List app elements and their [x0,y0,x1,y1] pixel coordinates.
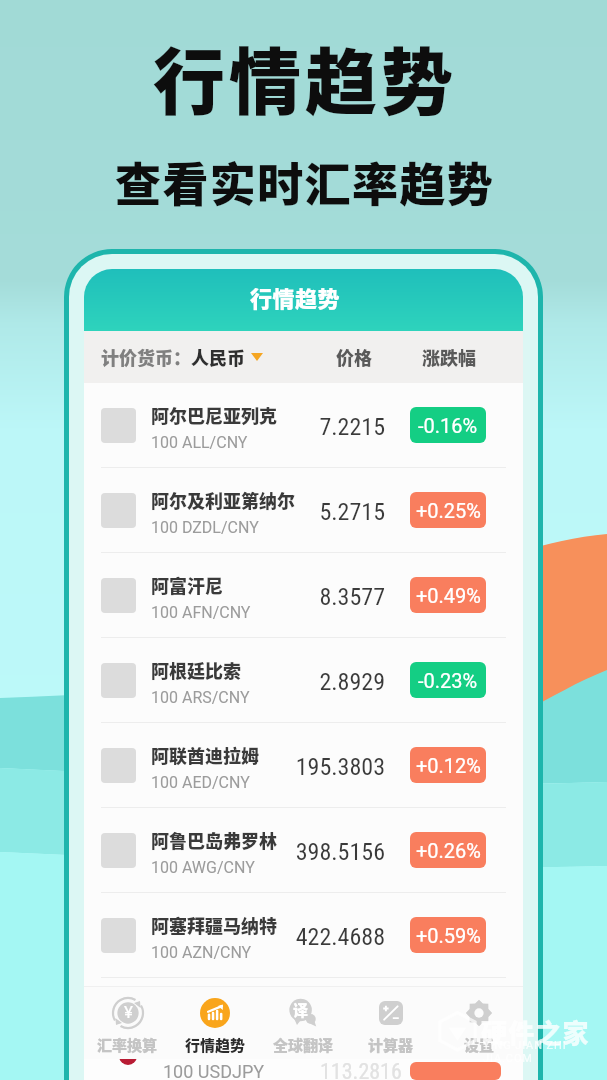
staticText: 计价货币： [101,344,191,370]
staticText: 100 DZDL/CNY [151,518,259,537]
button[interactable]: 行情趋势 [171,986,259,1059]
button[interactable]: 全球翻译 [259,986,347,1059]
staticText: 113.2816 [320,1059,402,1080]
staticText: 阿尔及利亚第纳尔 [151,487,295,513]
other: 行情趋势 [200,998,230,1028]
staticText: 100 USDJPY [163,1061,265,1080]
other: 计算器 [376,998,406,1028]
staticText: 涨跌幅 [422,344,476,370]
staticText: +0.12% [416,754,481,777]
staticText: 行情趋势 [153,24,458,128]
button[interactable]: 计价货币： [101,344,263,370]
staticText: 行情趋势 [185,1034,246,1056]
staticText: 2.8929 [241,668,385,696]
staticText: 阿塞拜疆马纳特 [151,912,277,938]
button[interactable]: 阿富汗尼 [84,553,523,637]
staticText: 设置 [464,1034,495,1056]
button[interactable]: 阿塞拜疆马纳特 [84,893,523,977]
button[interactable]: 阿尔及利亚第纳尔 [84,468,523,552]
staticText: +0.49% [416,584,481,607]
other: 全球翻译 [288,998,318,1028]
staticText: 人民币 [191,344,245,370]
staticText: 行情趋势 [250,281,341,313]
staticText: 阿联酋迪拉姆 [151,742,259,768]
staticText: 100 AWG/CNY [151,858,255,877]
staticText: -0.16% [418,414,478,437]
staticText: +0.25% [416,499,481,522]
staticText: 汇率换算 [97,1034,158,1056]
other: 汇率换算 [113,998,143,1028]
button[interactable]: 阿联酋迪拉姆 [84,723,523,807]
staticText: 7.2215 [241,413,385,441]
button[interactable]: 阿根廷比索 [84,638,523,722]
staticText: 阿富汗尼 [151,572,223,598]
button[interactable]: 阿鲁巴岛弗罗林 [84,808,523,892]
staticText: 100 AFN/CNY [151,603,251,622]
staticText: 195.3803 [241,753,385,781]
staticText: 阿鲁巴岛弗罗林 [151,827,277,853]
staticText: 译 [293,999,309,1021]
other: 设置 [464,998,494,1028]
staticText: 5.2715 [241,498,385,526]
staticText: ¥ [124,1002,133,1022]
staticText: 硬件之家 [481,1013,590,1051]
button[interactable]: 阿尔巴尼亚列克 [84,383,523,467]
staticText: 8.3577 [241,583,385,611]
staticText: -0.23% [418,669,478,692]
staticText: 100 AZN/CNY [151,943,252,962]
button[interactable]: 汇率换算 [84,986,171,1059]
staticText: 398.5156 [241,838,385,866]
staticText: 计算器 [368,1034,414,1056]
staticText: 价格 [336,344,372,370]
staticText: 阿尔巴尼亚列克 [151,402,277,428]
staticText: +0.26% [416,839,481,862]
staticText: 100 ALL/CNY [151,433,248,452]
staticText: 422.4688 [241,923,385,951]
staticText: 全球翻译 [273,1034,334,1056]
staticText: 100 ARS/CNY [151,688,250,707]
staticText: +0.59% [416,924,481,947]
staticText: 100 AED/CNY [151,773,250,792]
staticText: 阿根廷比索 [151,657,241,683]
staticText: 查看实时汇率趋势 [115,148,495,215]
button[interactable]: 计算器 [347,986,435,1059]
button[interactable]: 设置 [435,986,523,1059]
staticText: YING JIAN ZHI JIA.COM [483,1039,607,1064]
